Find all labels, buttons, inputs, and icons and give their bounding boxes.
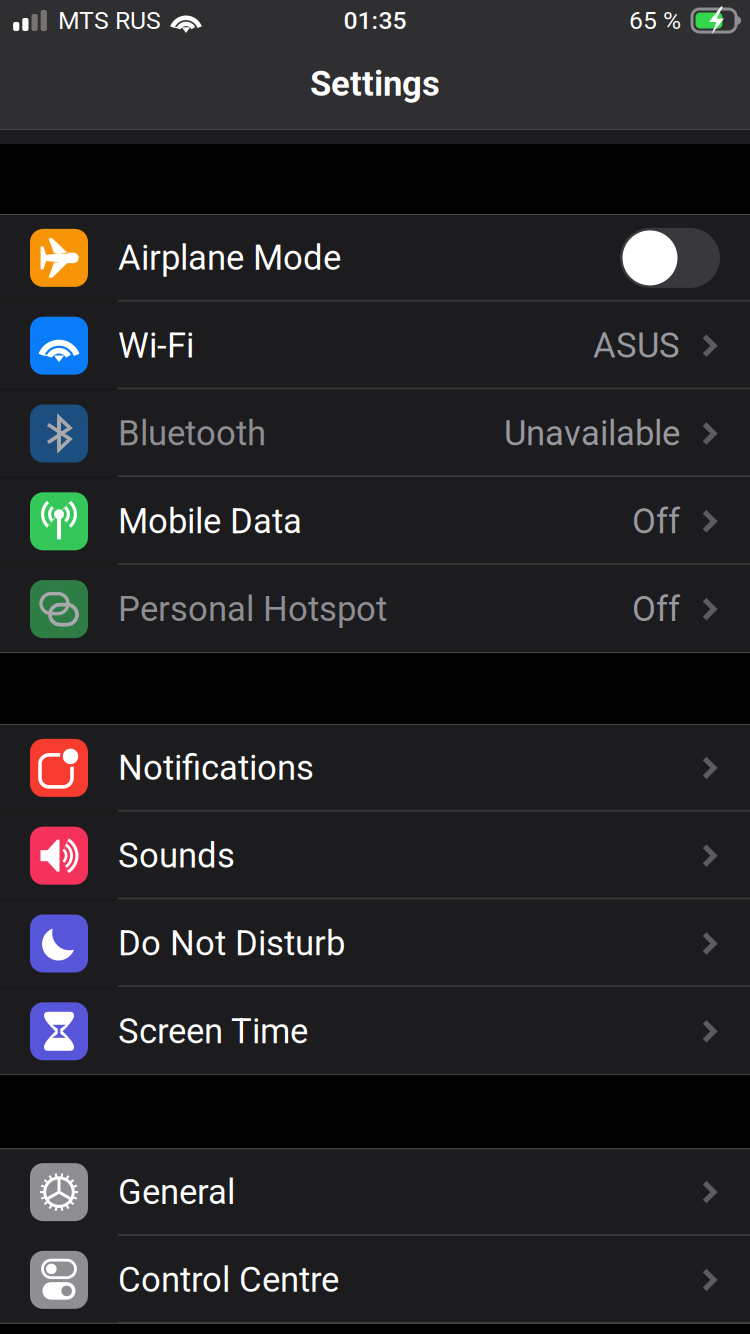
button[interactable]: General [0,1148,750,1236]
staticText: Notifications [118,748,314,788]
button[interactable]: Sounds [0,812,750,900]
staticText: Screen Time [118,1011,308,1052]
staticText: Unavailable [504,413,680,454]
staticText: Mobile Data [118,501,302,542]
button[interactable]: Control Centre [0,1236,750,1324]
staticText: MTS RUS [58,6,161,35]
button[interactable]: Do Not Disturb [0,900,750,987]
button[interactable]: Notifications [0,724,750,812]
button[interactable]: Screen Time [0,987,750,1075]
staticText: Sounds [118,835,235,876]
staticText: Wi-Fi [118,325,194,366]
staticText: Personal Hotspot [118,589,387,629]
staticText: Airplane Mode [118,238,341,278]
staticText: Off [632,501,680,542]
button[interactable]: Mobile Data [0,477,750,565]
button[interactable]: Bluetooth [0,390,750,477]
staticText: 65 % [629,6,681,35]
staticText: General [118,1172,235,1212]
button[interactable]: Personal Hotspot [0,565,750,653]
staticText: Off [632,589,680,629]
button[interactable]: Airplane Mode [0,214,750,302]
button[interactable]: Wi-Fi [0,302,750,390]
staticText: Bluetooth [118,413,266,454]
staticText: 01:35 [343,6,406,35]
staticText: Settings [310,64,440,104]
staticText: Control Centre [118,1260,339,1300]
staticText: Do Not Disturb [118,923,345,964]
staticText: ASUS [593,325,680,366]
